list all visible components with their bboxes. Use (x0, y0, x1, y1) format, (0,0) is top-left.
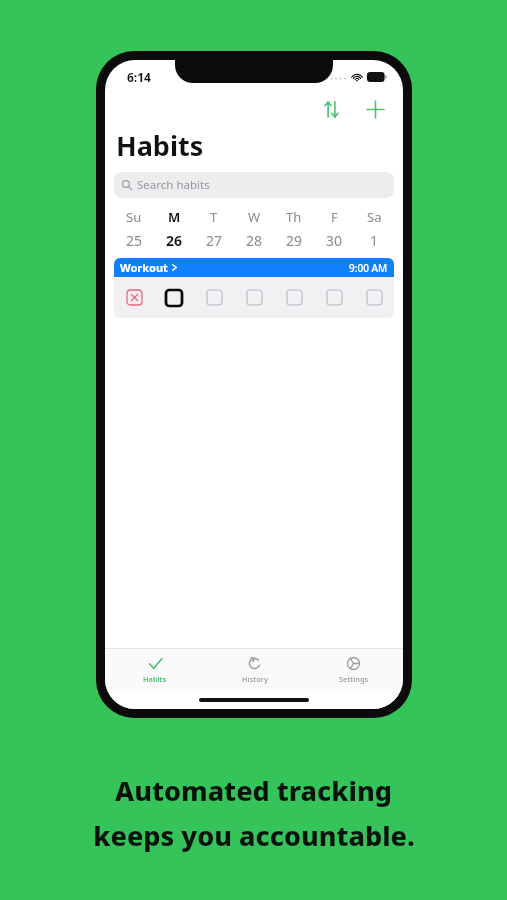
staticText: 1 (370, 231, 379, 250)
button[interactable]: Habits (105, 649, 205, 691)
staticText: keeps you accountable. (93, 817, 415, 854)
staticText: 28 (246, 231, 263, 250)
staticText: Th (286, 208, 302, 226)
staticText: M (168, 208, 181, 226)
staticText: Settings (339, 674, 369, 684)
staticText: 30 (326, 231, 343, 250)
button[interactable]: Search habits (114, 172, 394, 198)
staticText: 6:14 (127, 69, 151, 85)
button[interactable]: Day 4 check (234, 277, 274, 318)
staticText: Su (126, 208, 142, 226)
staticText: W (248, 208, 261, 226)
button[interactable]: 26 (154, 231, 194, 250)
button[interactable]: Th (274, 208, 314, 226)
staticText: F (331, 208, 338, 226)
staticText: Habits (143, 674, 167, 684)
button[interactable]: History (205, 649, 304, 691)
button[interactable]: M (154, 208, 194, 226)
button[interactable]: F (314, 208, 354, 226)
button[interactable]: 27 (194, 231, 234, 250)
button[interactable]: T (194, 208, 234, 226)
button[interactable]: Day 6 check (314, 277, 354, 318)
staticText: History (242, 674, 268, 684)
button[interactable]: Su (114, 208, 154, 226)
staticText: Habits (116, 127, 204, 164)
staticText: 27 (206, 231, 223, 250)
staticText: Automated tracking (115, 772, 392, 809)
button[interactable]: Sort habits (314, 93, 348, 125)
staticText: T (210, 208, 218, 226)
staticText: 26 (166, 231, 183, 250)
button[interactable]: W (234, 208, 274, 226)
button[interactable]: Settings (304, 649, 403, 691)
button[interactable]: Day 7 check (354, 277, 394, 318)
staticText: Sa (367, 208, 382, 226)
button[interactable]: Day 1 check (114, 277, 154, 318)
staticText: Search habits (137, 177, 210, 193)
button[interactable]: 1 (354, 231, 394, 250)
button[interactable]: 25 (114, 231, 154, 250)
button[interactable]: 30 (314, 231, 354, 250)
button[interactable]: Sa (354, 208, 394, 226)
button[interactable]: Day 3 check (194, 277, 234, 318)
button[interactable]: 29 (274, 231, 314, 250)
staticText: 29 (286, 231, 303, 250)
button[interactable]: Day 2 check (154, 277, 194, 318)
staticText: 9:00 AM (349, 261, 388, 275)
staticText: Workout (120, 260, 168, 275)
button[interactable]: Add habit (358, 93, 392, 125)
button[interactable]: Day 5 check (274, 277, 314, 318)
staticText: 25 (126, 231, 143, 250)
button[interactable]: 28 (234, 231, 274, 250)
button[interactable]: Workout (114, 258, 394, 277)
